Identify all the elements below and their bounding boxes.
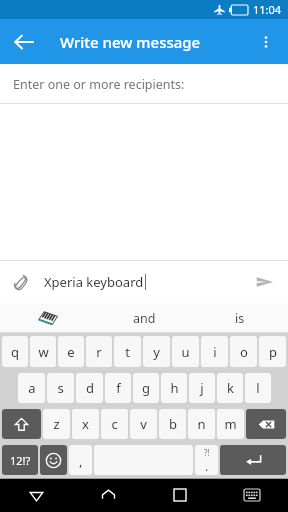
staticText: Write new message: [60, 32, 201, 52]
button[interactable]: u: [172, 336, 199, 367]
staticText: k: [227, 379, 234, 397]
button[interactable]: c: [101, 409, 128, 439]
button[interactable]: r: [86, 336, 112, 367]
button[interactable]: Send: [250, 267, 280, 297]
staticText: n: [197, 415, 206, 433]
staticText: f: [116, 379, 121, 397]
button[interactable]: Home: [72, 478, 144, 512]
button[interactable]: k: [217, 373, 243, 403]
button[interactable]: t: [114, 336, 141, 367]
staticText: q: [11, 343, 19, 361]
button[interactable]: Hide keyboard: [216, 478, 288, 512]
button[interactable]: a: [18, 373, 45, 403]
staticText: 12!?: [10, 453, 31, 468]
button[interactable]: q: [2, 336, 28, 367]
button[interactable]: More options: [248, 24, 284, 60]
button[interactable]: n: [188, 409, 215, 439]
button[interactable]: Back: [0, 478, 72, 512]
staticText: ?!: [204, 447, 210, 458]
staticText: e: [67, 343, 75, 361]
button[interactable]: w: [30, 336, 56, 367]
staticText: z: [53, 415, 60, 433]
staticText: s: [57, 379, 64, 397]
staticText: t: [125, 343, 130, 361]
staticText: and: [133, 310, 156, 327]
staticText: j: [200, 379, 204, 397]
staticText: x: [82, 415, 89, 433]
button[interactable]: ?!: [195, 445, 218, 475]
button[interactable]: y: [143, 336, 170, 367]
button[interactable]: Shift: [2, 409, 41, 439]
button[interactable]: d: [76, 373, 103, 403]
button[interactable]: h: [161, 373, 187, 403]
staticText: c: [111, 415, 118, 433]
button[interactable]: l: [245, 373, 271, 403]
button[interactable]: Backspace: [246, 409, 286, 439]
staticText: b: [169, 415, 177, 433]
button[interactable]: v: [130, 409, 157, 439]
staticText: d: [86, 379, 94, 397]
staticText: Enter one or more recipients:: [13, 76, 185, 93]
staticText: r: [96, 343, 102, 361]
staticText: v: [140, 415, 147, 433]
staticText: 11:04: [253, 2, 282, 17]
button[interactable]: j: [189, 373, 215, 403]
staticText: w: [38, 343, 49, 361]
staticText: h: [170, 379, 179, 397]
button[interactable]: Enter: [220, 445, 286, 475]
button[interactable]: Recent apps: [144, 478, 216, 512]
button[interactable]: p: [259, 336, 286, 367]
staticText: i: [213, 343, 217, 361]
button[interactable]: Enter one or more recipients:: [0, 64, 288, 104]
staticText: y: [153, 343, 160, 361]
button[interactable]: Attach: [6, 267, 36, 297]
staticText: ,: [79, 452, 83, 470]
button[interactable]: e: [58, 336, 84, 367]
staticText: p: [269, 343, 277, 361]
button[interactable]: Back: [6, 24, 42, 60]
button[interactable]: g: [133, 373, 159, 403]
button[interactable]: f: [105, 373, 131, 403]
button[interactable]: o: [230, 336, 257, 367]
staticText: u: [181, 343, 190, 361]
button[interactable]: s: [47, 373, 74, 403]
button[interactable]: is: [192, 303, 288, 333]
staticText: a: [28, 379, 36, 397]
button[interactable]: and: [96, 303, 192, 333]
button[interactable]: Emoji: [40, 445, 67, 475]
button[interactable]: b: [159, 409, 186, 439]
button[interactable]: m: [217, 409, 244, 439]
staticText: Xperia keyboard: [44, 273, 144, 291]
button[interactable]: ,: [69, 445, 92, 475]
button[interactable]: z: [43, 409, 70, 439]
button[interactable]: i: [201, 336, 228, 367]
staticText: is: [235, 310, 245, 327]
staticText: g: [142, 379, 150, 397]
button[interactable]: 12!?: [2, 445, 38, 475]
staticText: o: [240, 343, 248, 361]
button[interactable]: Keyboard settings: [0, 303, 96, 333]
staticText: l: [256, 379, 260, 397]
button[interactable]: x: [72, 409, 99, 439]
staticText: .: [205, 458, 209, 473]
staticText: m: [224, 415, 237, 433]
